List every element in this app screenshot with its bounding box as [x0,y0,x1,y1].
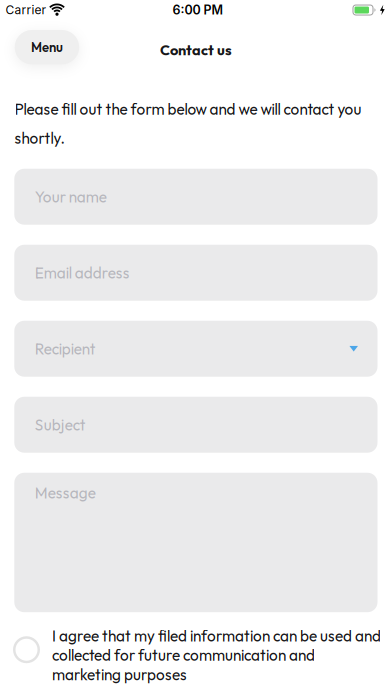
staticText: Please fill out the form below and we wi… [14,99,361,148]
staticText: Subject [35,415,86,434]
button[interactable]: I agree that my filed information can be… [0,612,392,684]
staticText: Menu [31,39,63,55]
button[interactable]: Message [14,473,377,612]
staticText: Email address [35,263,130,282]
button[interactable]: Email address [14,245,377,301]
staticText: Carrier [5,3,46,17]
staticText: Recipient [35,339,96,358]
staticText: Your name [35,187,107,206]
staticText: Message [35,483,96,502]
button[interactable]: Your name [14,169,377,225]
staticText: I agree that my filed information can be… [52,626,381,684]
button[interactable]: Subject [14,397,377,453]
button[interactable]: Menu [15,30,79,64]
staticText: Contact us [160,41,232,59]
staticText: 6:00 PM [172,2,223,17]
button[interactable]: Recipient [14,321,377,377]
